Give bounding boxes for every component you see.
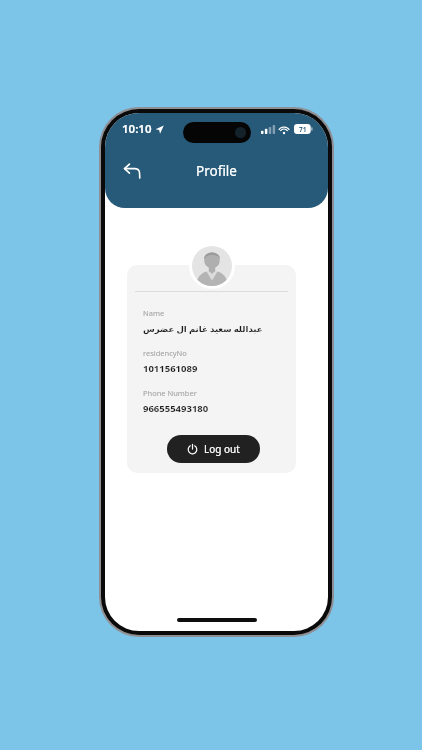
button[interactable]: Back — [115, 153, 149, 187]
staticText: 1011561089 — [143, 362, 198, 375]
staticText: Log out — [204, 442, 240, 456]
staticText: Profile — [196, 162, 237, 180]
staticText: 71 — [299, 125, 307, 134]
staticText: 966555493180 — [143, 402, 209, 415]
staticText: residencyNo — [143, 348, 187, 358]
staticText: عبدالله سعيد غانم ال عضرس — [143, 323, 263, 335]
staticText: 10:10 — [122, 121, 152, 137]
button[interactable]: Log out — [167, 435, 260, 463]
staticText: Phone Number — [143, 388, 197, 398]
staticText: Name — [143, 308, 165, 318]
